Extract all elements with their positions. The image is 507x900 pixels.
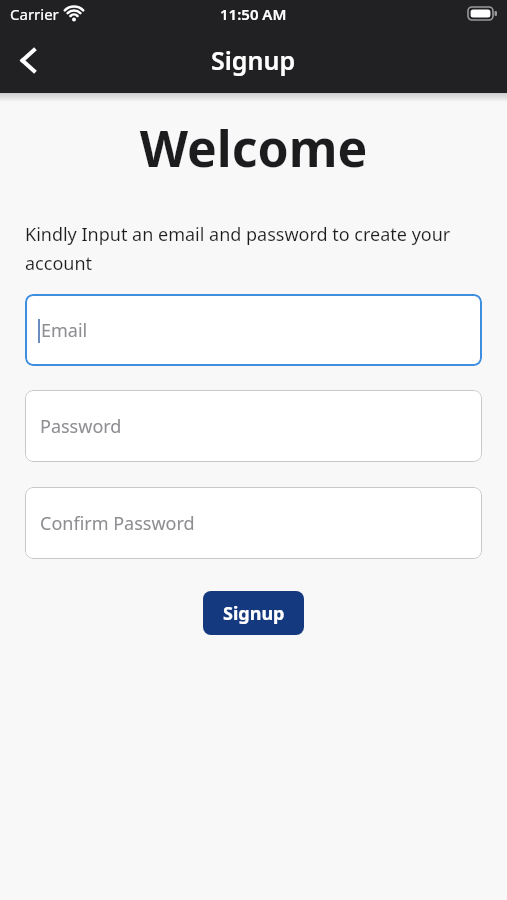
staticText: Welcome bbox=[25, 114, 482, 182]
button[interactable]: Password bbox=[25, 390, 482, 462]
button[interactable] bbox=[8, 40, 48, 80]
staticText: Signup bbox=[211, 43, 296, 77]
staticText: Confirm Password bbox=[40, 511, 195, 536]
button[interactable]: Signup bbox=[203, 591, 304, 635]
staticText: Signup bbox=[223, 601, 285, 626]
staticText: Kindly Input an email and password to cr… bbox=[25, 222, 482, 275]
button[interactable]: Confirm Password bbox=[25, 487, 482, 559]
staticText: Password bbox=[40, 414, 122, 439]
staticText: Email bbox=[41, 318, 88, 343]
button[interactable]: Email bbox=[25, 294, 482, 366]
staticText: Carrier bbox=[10, 4, 59, 24]
staticText: 11:50 AM bbox=[220, 4, 287, 24]
